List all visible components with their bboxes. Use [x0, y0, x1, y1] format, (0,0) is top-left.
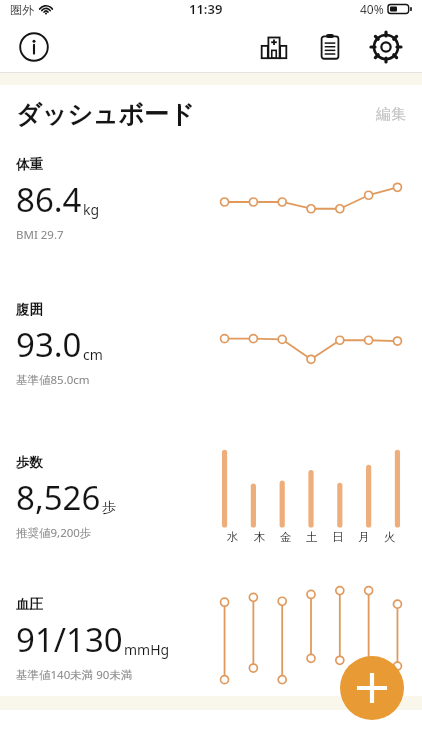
staticText: 土 [306, 530, 318, 544]
staticText: 8,526 [16, 475, 101, 520]
staticText: 基準値140未満 90未満 [16, 667, 133, 683]
staticText: 91/130 [16, 617, 123, 662]
button[interactable]: Settings [364, 25, 408, 69]
staticText: 金 [280, 530, 292, 544]
staticText: 火 [384, 530, 396, 544]
button[interactable]: 体重 [16, 156, 406, 243]
staticText: 40% [360, 1, 384, 17]
button[interactable]: Information [14, 27, 54, 67]
staticText: cm [83, 345, 103, 364]
staticText: 基準値85.0cm [16, 372, 90, 388]
staticText: 編集 [376, 105, 406, 124]
staticText: 圏外 [10, 2, 34, 17]
staticText: 血圧 [16, 596, 43, 613]
staticText: 水 [227, 530, 239, 544]
staticText: 86.4 [16, 177, 82, 222]
staticText: 日 [332, 530, 344, 544]
staticText: 11:39 [189, 0, 223, 18]
staticText: kg [83, 200, 100, 219]
staticText: 推奨値9,200歩 [16, 525, 92, 541]
staticText: 歩 [102, 499, 116, 517]
staticText: 月 [358, 530, 370, 544]
button[interactable]: Add record [340, 656, 404, 720]
staticText: 体重 [16, 156, 43, 173]
button[interactable]: 血圧 [16, 584, 406, 694]
button[interactable]: Hospital [252, 25, 296, 69]
staticText: ダッシュボード [16, 99, 195, 130]
staticText: BMI 29.7 [16, 227, 64, 243]
button[interactable]: ダッシュボード [16, 99, 406, 130]
staticText: 93.0 [16, 322, 82, 367]
button[interactable]: Records [308, 25, 352, 69]
staticText: 木 [254, 530, 266, 544]
staticText: 歩数 [16, 454, 43, 471]
button[interactable]: 腹囲 [16, 301, 406, 388]
staticText: mmHg [124, 640, 170, 659]
staticText: 腹囲 [16, 301, 43, 318]
button[interactable]: 歩数 [16, 450, 406, 544]
